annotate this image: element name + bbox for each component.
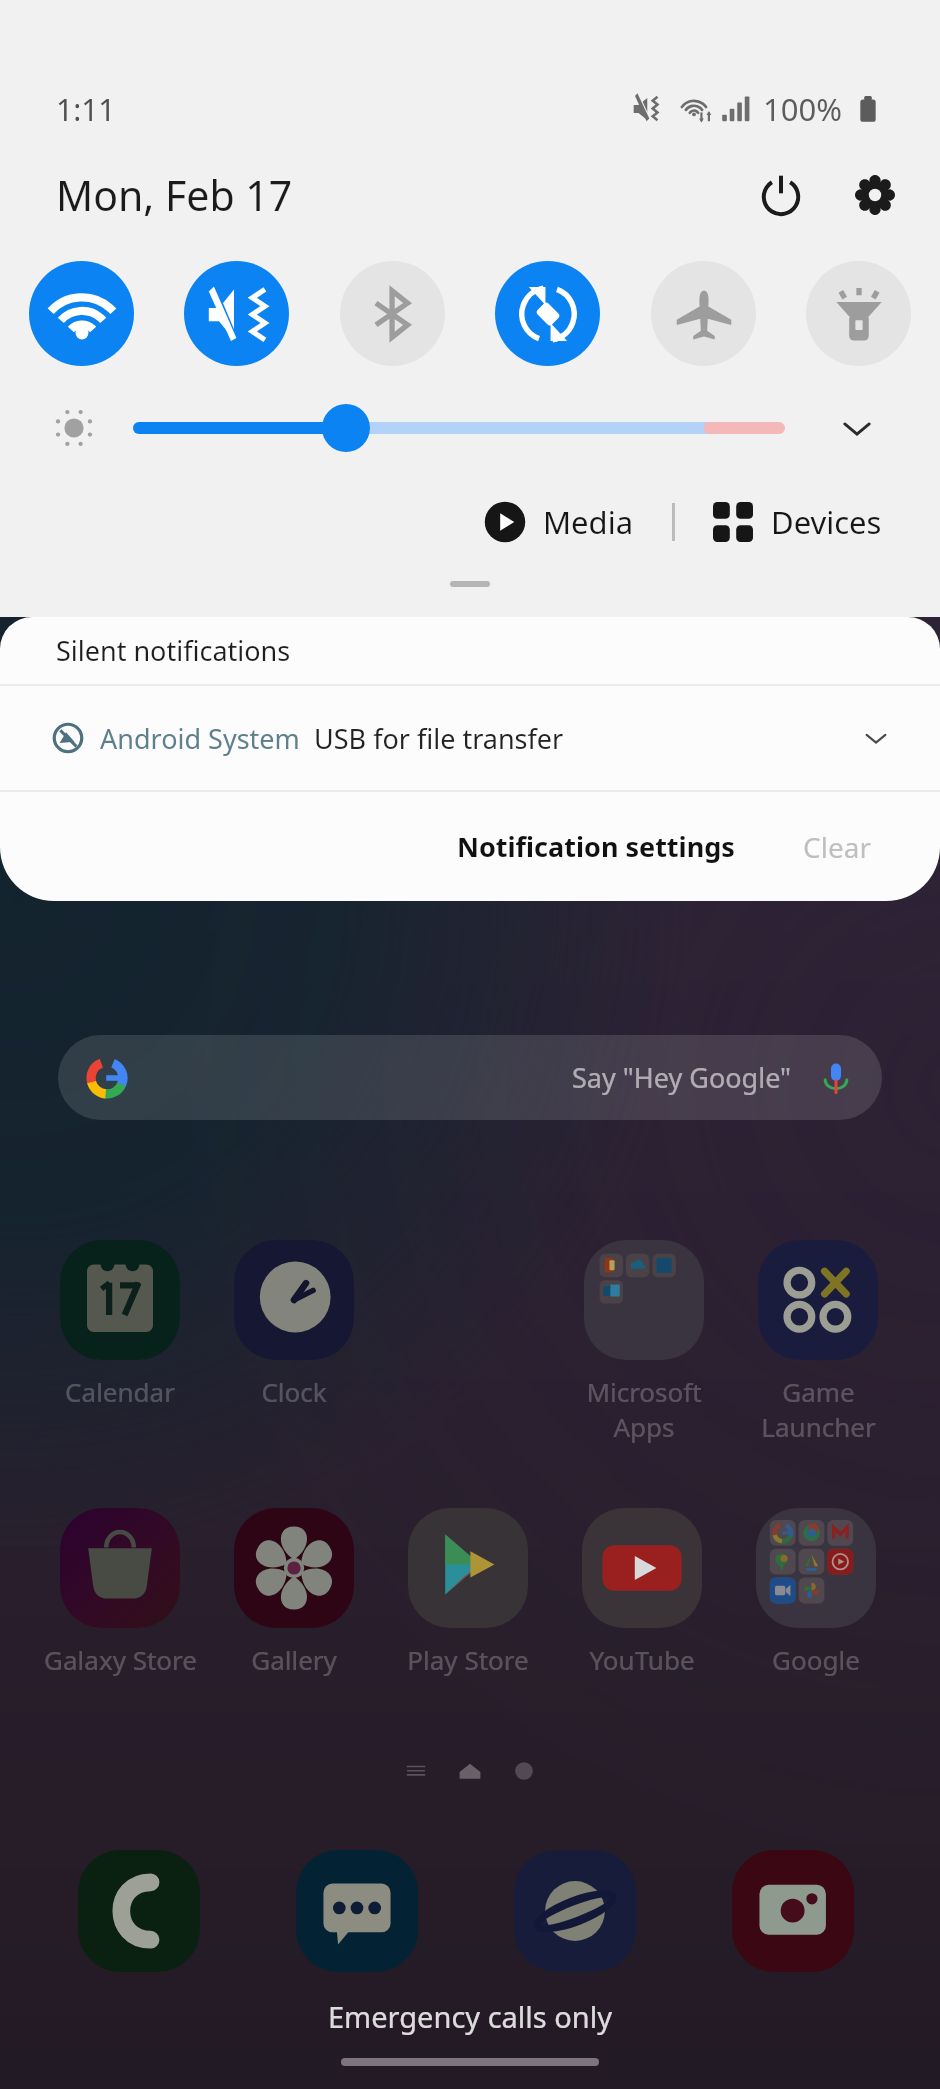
button[interactable]: Game	[731, 1240, 905, 1444]
button[interactable]: Phone	[78, 1850, 200, 1972]
button[interactable]: Media	[475, 492, 642, 552]
staticText: Calendar	[65, 1374, 175, 1409]
staticText: 1:11	[56, 89, 116, 130]
staticText: Notification settings	[457, 828, 735, 865]
button[interactable]: Wi-Fi	[29, 261, 134, 366]
button[interactable]: Play Store	[381, 1508, 555, 1677]
button[interactable]: Gallery	[207, 1508, 381, 1677]
staticText: Microsoft	[586, 1374, 702, 1409]
button[interactable]: Silent notifications	[0, 617, 940, 684]
button[interactable]: Devices	[705, 493, 890, 551]
staticText: Silent notifications	[56, 632, 291, 669]
staticText: Apps	[613, 1409, 675, 1444]
button[interactable]: Internet	[514, 1850, 636, 1972]
staticText: Android System	[100, 720, 300, 757]
button[interactable]: Camera	[732, 1850, 854, 1972]
staticText: Game	[782, 1374, 855, 1409]
staticText: Play Store	[407, 1642, 529, 1677]
button[interactable]: Calendar	[33, 1240, 207, 1409]
button[interactable]: Say "Hey Google"	[58, 1035, 882, 1120]
button[interactable]: Microsoft	[557, 1240, 731, 1444]
staticText: Say "Hey Google"	[572, 1059, 792, 1096]
button[interactable]: Bluetooth	[340, 261, 445, 366]
button[interactable]: YouTube	[555, 1508, 729, 1677]
staticText: Launcher	[761, 1409, 876, 1444]
staticText: Emergency calls only	[328, 1997, 612, 2036]
button[interactable]: Clock	[207, 1240, 381, 1409]
button[interactable]: Notification settings	[445, 812, 747, 881]
button[interactable]: Galaxy Store	[33, 1508, 207, 1677]
button[interactable]: Android System	[0, 686, 940, 790]
staticText: Clear	[803, 828, 871, 866]
staticText: Clock	[261, 1374, 327, 1409]
button[interactable]: Flashlight	[806, 261, 911, 366]
staticText: USB for file transfer	[314, 720, 564, 757]
staticText: 100%	[763, 88, 842, 130]
staticText: Gallery	[251, 1642, 337, 1677]
button[interactable]: Expand brightness	[830, 401, 884, 455]
staticText: Media	[543, 501, 634, 543]
staticText: Mon, Feb 17	[56, 167, 293, 223]
staticText: Galaxy Store	[44, 1642, 197, 1677]
button[interactable]: Flight mode	[651, 261, 756, 366]
staticText: Devices	[771, 501, 882, 543]
button[interactable]: Mute	[184, 261, 289, 366]
staticText: YouTube	[589, 1642, 695, 1677]
button[interactable]: Google	[729, 1508, 903, 1677]
button[interactable]: Clear	[791, 812, 883, 882]
button[interactable]: Power	[750, 166, 812, 224]
button[interactable]: Messages	[296, 1850, 418, 1972]
button[interactable]: Auto rotate	[495, 261, 600, 366]
staticText: Google	[772, 1642, 860, 1677]
button[interactable]: Settings	[844, 166, 906, 224]
